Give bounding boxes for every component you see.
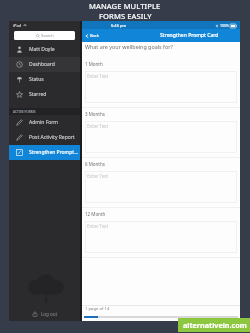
staticText: Back — [90, 33, 99, 38]
staticText: 3 Months — [85, 111, 105, 117]
staticText: 100% — [220, 23, 229, 28]
staticText: 6 Months — [85, 161, 105, 167]
staticText: What are your wellbeing goals for? — [85, 43, 173, 50]
staticText: iPad — [13, 23, 22, 28]
button[interactable]: Matt Doyle — [9, 42, 80, 57]
staticText: Enter Text — [87, 223, 109, 229]
staticText: Strengthen Prompt... — [29, 149, 79, 156]
button[interactable]: Enter Text — [85, 71, 237, 103]
staticText: Status — [29, 76, 44, 83]
staticText: Search — [41, 33, 54, 38]
button[interactable]: Post Activity Report — [9, 130, 80, 145]
staticText: Starred — [29, 91, 47, 98]
staticText: Enter Text — [87, 73, 109, 79]
staticText: Post Activity Report — [29, 134, 75, 141]
button[interactable]: Log out — [9, 308, 80, 320]
staticText: Enter Text — [87, 173, 109, 179]
staticText: alternativein.com — [183, 320, 247, 330]
staticText: FORMS EASILY — [99, 11, 152, 21]
staticText: 6:46 pm — [111, 23, 127, 28]
button[interactable]: Enter Text — [85, 221, 237, 253]
button[interactable]: Enter Text — [85, 171, 237, 203]
button[interactable]: Dashboard — [9, 57, 80, 72]
staticText: Matt Doyle — [29, 46, 55, 53]
button[interactable]: Enter Text — [85, 121, 237, 153]
staticText: MANAGE MULTIPLE — [89, 1, 161, 11]
staticText: 12 Month — [85, 211, 106, 217]
button[interactable]: Back — [82, 31, 102, 40]
staticText: Log out — [41, 311, 58, 317]
staticText: 1 Month — [85, 61, 103, 67]
staticText: Strengthen Prompt Card — [160, 32, 219, 39]
button[interactable]: Admin Form — [9, 115, 80, 130]
button[interactable]: Status — [9, 72, 80, 87]
staticText: Admin Form — [29, 119, 58, 126]
staticText: ACTIVE FORMS — [13, 110, 36, 114]
staticText: Enter Text — [87, 123, 109, 129]
other: Log out — [32, 311, 38, 317]
button[interactable]: Search — [14, 31, 75, 40]
staticText: 1 page of 14 — [85, 306, 110, 312]
button[interactable]: Strengthen Prompt... — [9, 145, 80, 160]
button[interactable]: Starred — [9, 87, 80, 102]
staticText: Dashboard — [29, 61, 55, 68]
